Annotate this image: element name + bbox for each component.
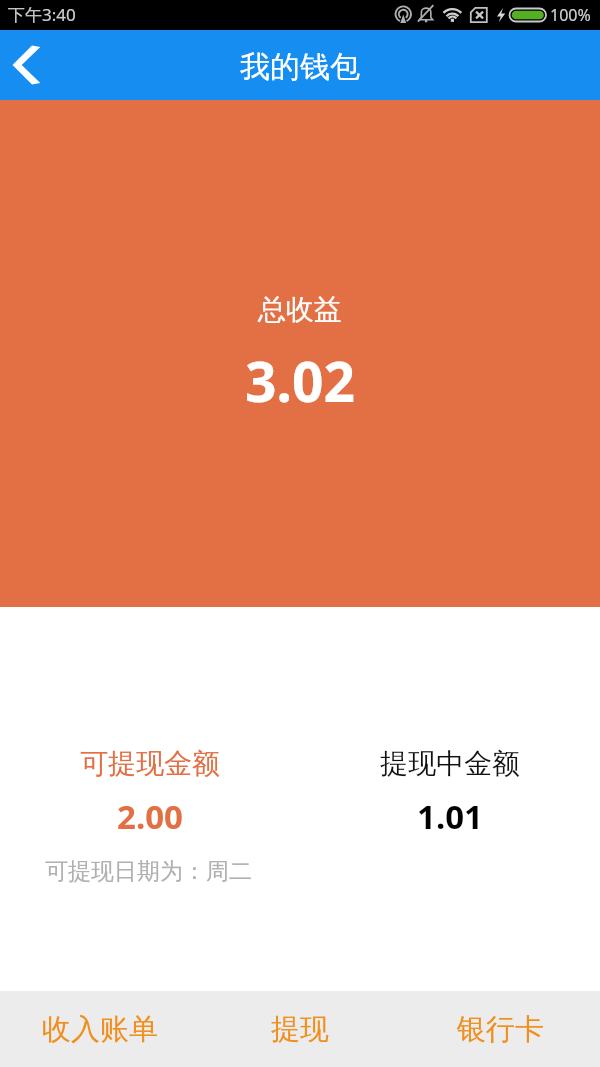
staticText: 银行卡 [457, 1011, 544, 1048]
staticText: 可提现金额 [80, 746, 220, 781]
staticText: 2.00 [117, 794, 183, 839]
button[interactable]: 收入账单 [0, 991, 200, 1067]
button[interactable]: 银行卡 [400, 991, 600, 1067]
button[interactable]: 提现 [200, 991, 400, 1067]
staticText: 我的钱包 [240, 48, 360, 86]
staticText: 总收益 [258, 292, 342, 327]
staticText: 3.02 [245, 343, 355, 418]
staticText: 提现中金额 [380, 746, 520, 781]
staticText: 可提现日期为：周二 [45, 857, 252, 886]
staticText: 下午3:40 [8, 3, 76, 26]
staticText: 收入账单 [42, 1011, 158, 1048]
staticText: 100% [550, 4, 591, 26]
staticText: 提现 [271, 1011, 329, 1048]
staticText: 1.01 [417, 794, 483, 839]
button[interactable]: Back [0, 30, 62, 100]
